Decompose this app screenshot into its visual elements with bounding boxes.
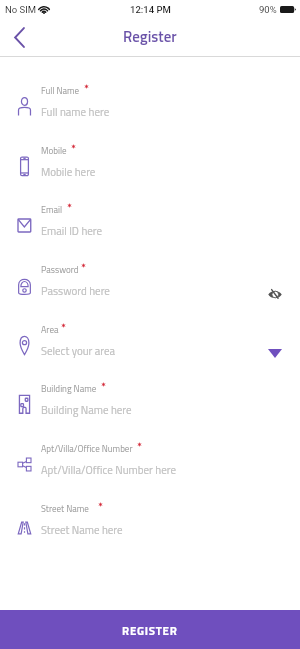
- staticText: Area: [41, 323, 59, 337]
- staticText: Email: [41, 203, 63, 217]
- staticText: Full name here: [41, 104, 110, 121]
- button[interactable]: Apt/Villa/Office Number: [0, 434, 300, 480]
- staticText: Select your area: [41, 343, 116, 360]
- button[interactable]: Building Name: [0, 374, 300, 420]
- staticText: 12:14 PM: [130, 4, 171, 15]
- button[interactable]: Email: [0, 195, 300, 241]
- button[interactable]: Password: [0, 255, 300, 301]
- staticText: No SIM: [5, 4, 37, 15]
- staticText: Building Name: [41, 382, 97, 396]
- button[interactable]: Select area: [264, 342, 286, 364]
- staticText: Building Name here: [41, 402, 132, 419]
- staticText: Password here: [41, 283, 110, 300]
- button[interactable]: Mobile: [0, 136, 300, 182]
- button[interactable]: Area: [0, 315, 300, 361]
- staticText: Mobile here: [41, 164, 96, 181]
- button[interactable]: REGISTER: [0, 610, 300, 649]
- staticText: Mobile: [41, 144, 67, 158]
- staticText: REGISTER: [122, 622, 178, 639]
- staticText: Apt/Villa/Office Number: [41, 442, 133, 456]
- button[interactable]: Street Name: [0, 494, 300, 540]
- button[interactable]: Full Name: [0, 76, 300, 122]
- staticText: Full Name: [41, 84, 80, 98]
- staticText: Apt/Villa/Office Number here: [41, 462, 176, 479]
- staticText: Password: [41, 263, 79, 277]
- staticText: 90%: [259, 4, 277, 15]
- button[interactable]: Show password: [265, 284, 285, 304]
- staticText: Email ID here: [41, 223, 103, 240]
- button[interactable]: Back: [8, 24, 30, 50]
- staticText: Street Name here: [41, 522, 123, 539]
- staticText: Register: [123, 25, 177, 48]
- staticText: Street Name: [41, 502, 89, 516]
